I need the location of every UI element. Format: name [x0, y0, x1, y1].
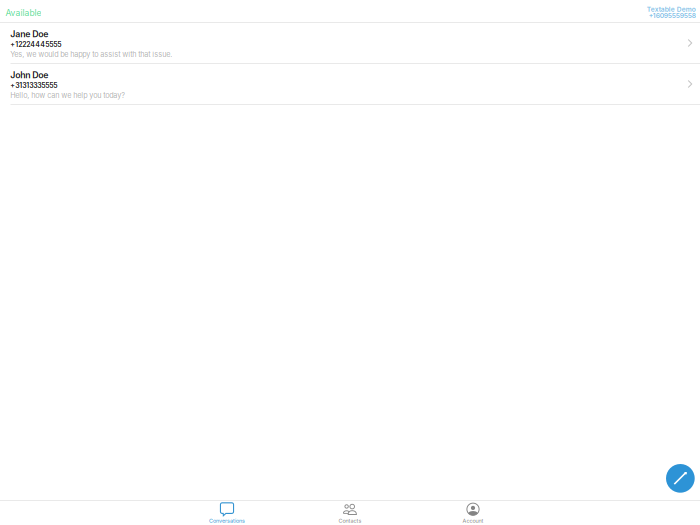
staticText: Account — [462, 518, 483, 524]
staticText: Contacts — [338, 518, 361, 524]
staticText: Textable Demo — [647, 6, 696, 13]
staticText: Conversations — [209, 518, 245, 524]
button[interactable]: Jane Doe — [0, 23, 700, 63]
button[interactable]: John Doe — [0, 64, 700, 104]
button[interactable]: Account — [418, 501, 528, 525]
button[interactable]: Compose new message — [666, 464, 695, 493]
staticText: Yes, we would be happy to assist with th… — [10, 50, 172, 58]
staticText: +12224445555 — [10, 41, 61, 48]
staticText: +31313335555 — [10, 82, 57, 89]
staticText: Hello, how can we help you today? — [10, 91, 125, 99]
staticText: Jane Doe — [10, 29, 48, 39]
button[interactable]: Conversations — [172, 501, 282, 525]
button[interactable]: Contacts — [295, 501, 405, 525]
staticText: +16095559558 — [649, 12, 696, 19]
staticText: John Doe — [10, 70, 48, 80]
staticText: Available — [5, 8, 41, 17]
